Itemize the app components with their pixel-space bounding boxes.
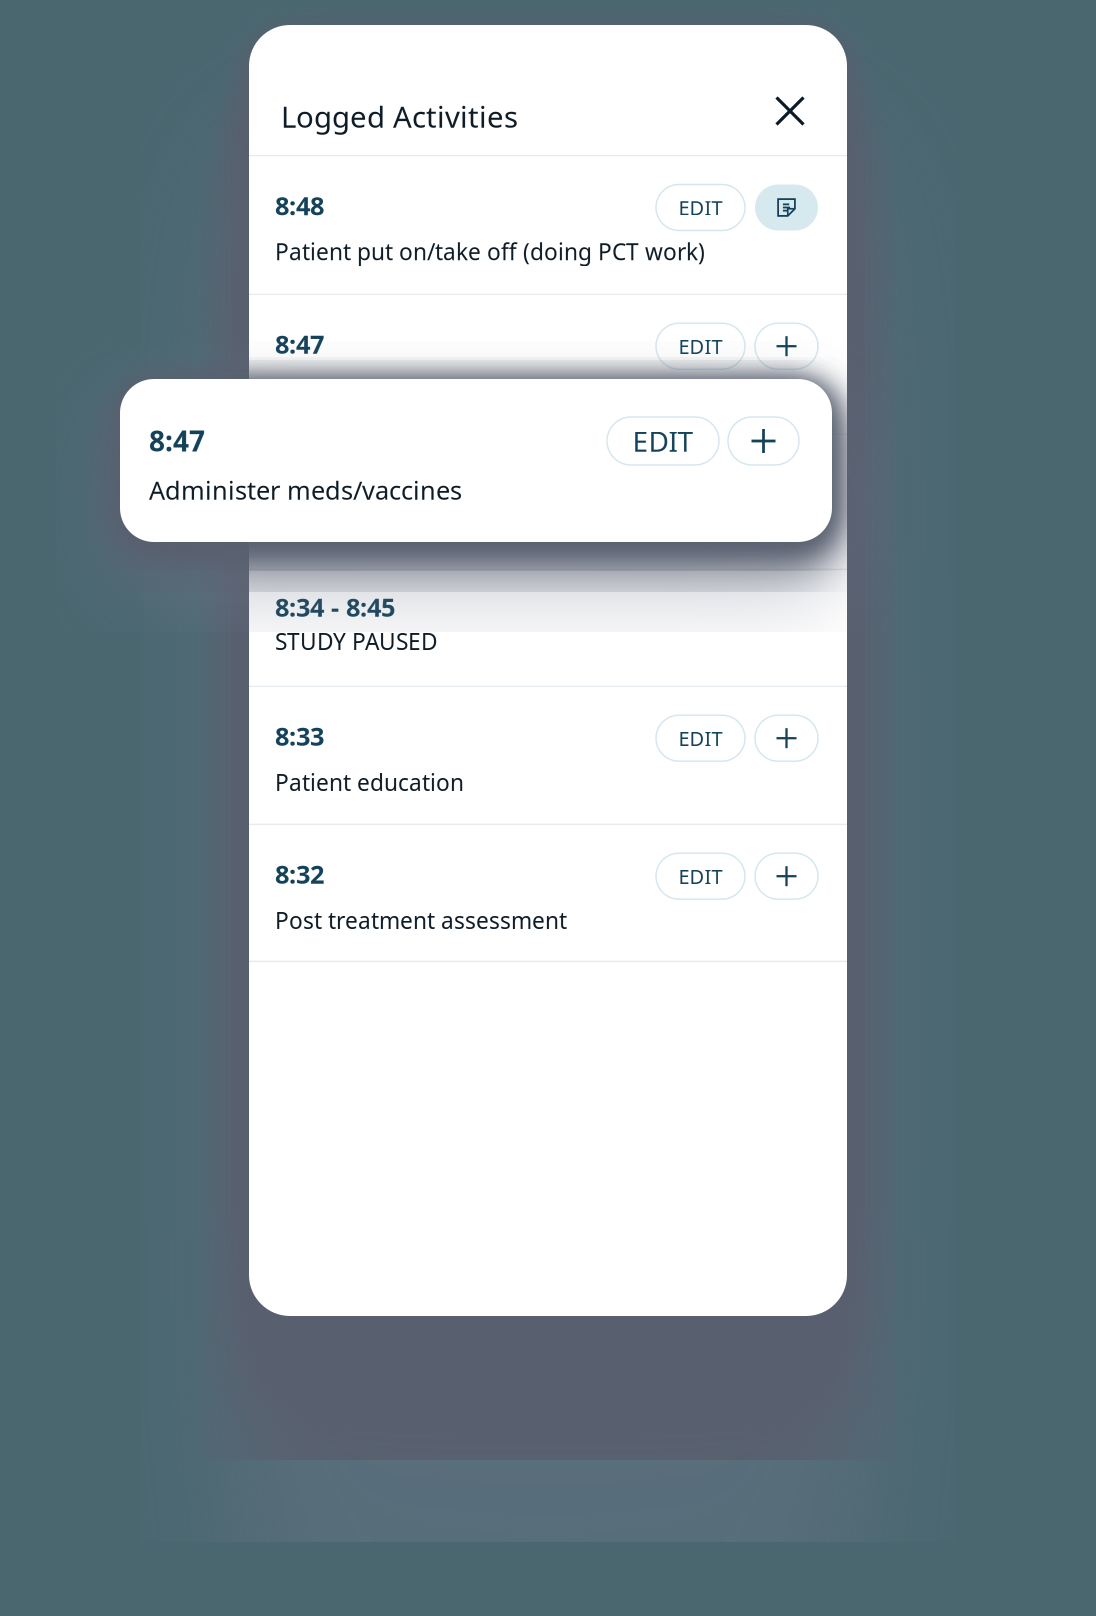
button[interactable]: EDIT (656, 853, 745, 899)
staticText: Post treatment assessment (275, 905, 567, 935)
staticText: 8:47 (149, 422, 205, 459)
staticText: 8:47 (275, 327, 324, 361)
staticText: 8:46 (275, 467, 324, 501)
staticText: 8:32 (275, 857, 324, 891)
button[interactable]: EDIT (656, 463, 745, 509)
staticText: Logged Activities (281, 97, 518, 136)
staticText: Administer meds/vaccines (275, 375, 555, 405)
staticText: 8:34 - 8:45 (275, 590, 395, 624)
button[interactable]: Close (766, 87, 814, 135)
button[interactable]: EDIT (656, 323, 745, 369)
button[interactable]: Add activity (755, 323, 818, 369)
staticText: STUDY PAUSED (275, 626, 438, 656)
staticText: Administer meds/vaccines (149, 473, 462, 507)
staticText: EDIT (678, 863, 722, 889)
button[interactable]: EDIT (656, 184, 745, 230)
button[interactable]: Add activity (755, 715, 818, 761)
staticText: EDIT (678, 725, 722, 751)
button[interactable]: Add activity (755, 463, 818, 509)
staticText: 8:33 (275, 719, 324, 753)
button[interactable]: Add activity (728, 417, 799, 465)
staticText: EDIT (678, 194, 722, 221)
button[interactable]: Add activity (755, 853, 818, 899)
staticText: Patient education (275, 767, 464, 797)
staticText: Obtain vitals (275, 515, 410, 545)
button[interactable]: EDIT (607, 417, 719, 465)
staticText: EDIT (678, 333, 722, 359)
staticText: 8:48 (275, 188, 324, 222)
staticText: EDIT (632, 422, 693, 460)
staticText: Patient put on/take off (doing PCT work) (275, 236, 705, 267)
button[interactable]: View note (755, 184, 818, 230)
button[interactable]: EDIT (656, 715, 745, 761)
